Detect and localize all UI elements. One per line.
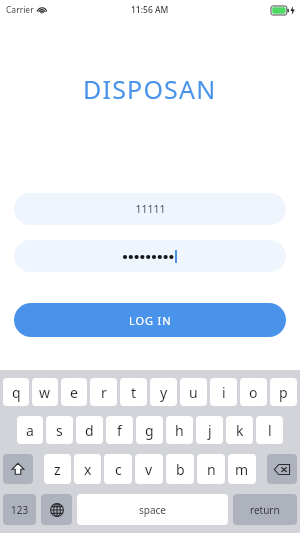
button[interactable]: r: [90, 378, 117, 406]
staticText: v: [145, 460, 153, 479]
staticText: m: [235, 460, 249, 479]
button[interactable]: d: [76, 416, 103, 444]
button[interactable]: o: [240, 378, 267, 406]
staticText: 11:56 AM: [131, 4, 169, 16]
button[interactable]: space: [77, 494, 228, 525]
button[interactable]: Change keyboard language: [41, 494, 72, 525]
staticText: l: [268, 421, 272, 440]
staticText: g: [145, 421, 154, 440]
staticText: space: [139, 503, 166, 517]
staticText: s: [56, 421, 63, 440]
button[interactable]: b: [166, 454, 194, 484]
staticText: w: [39, 383, 51, 402]
staticText: f: [117, 421, 122, 440]
staticText: r: [101, 383, 107, 402]
staticText: z: [54, 460, 61, 479]
button[interactable]: h: [166, 416, 193, 444]
button[interactable]: s: [46, 416, 73, 444]
button[interactable]: LOG IN: [14, 303, 286, 337]
staticText: t: [131, 383, 137, 402]
button[interactable]: v: [135, 454, 163, 484]
button[interactable]: n: [197, 454, 225, 484]
button[interactable]: e: [61, 378, 87, 406]
button[interactable]: x: [74, 454, 101, 484]
button[interactable]: t: [120, 378, 147, 406]
button[interactable]: k: [226, 416, 253, 444]
staticText: Carrier: [6, 4, 34, 16]
button[interactable]: y: [150, 378, 177, 406]
button[interactable]: l: [256, 416, 283, 444]
button[interactable]: z: [44, 454, 71, 484]
staticText: u: [189, 383, 198, 402]
button[interactable]: return: [233, 494, 297, 525]
staticText: o: [249, 383, 258, 402]
button[interactable]: p: [270, 378, 297, 406]
staticText: d: [85, 421, 94, 440]
button[interactable]: q: [3, 378, 29, 406]
staticText: i: [222, 383, 226, 402]
staticText: 11111: [135, 202, 166, 216]
staticText: x: [84, 460, 92, 479]
button[interactable]: m: [228, 454, 256, 484]
button[interactable]: Backspace: [267, 454, 297, 484]
button[interactable]: f: [106, 416, 133, 444]
staticText: return: [250, 503, 280, 517]
staticText: k: [236, 421, 244, 440]
staticText: DISPOSAN: [83, 72, 217, 106]
staticText: q: [12, 383, 21, 402]
button[interactable]: w: [32, 378, 58, 406]
staticText: LOG IN: [129, 313, 172, 328]
staticText: y: [160, 383, 168, 402]
staticText: j: [208, 421, 212, 440]
button[interactable]: a: [17, 416, 43, 444]
staticText: 123: [11, 503, 29, 517]
staticText: n: [207, 460, 216, 479]
button[interactable]: j: [196, 416, 223, 444]
button[interactable]: Shift: [3, 454, 33, 484]
staticText: c: [115, 460, 122, 479]
button[interactable]: c: [104, 454, 132, 484]
button[interactable]: [14, 240, 286, 272]
staticText: a: [26, 421, 34, 440]
button[interactable]: 11111: [14, 193, 286, 225]
button[interactable]: i: [210, 378, 237, 406]
button[interactable]: 123: [3, 494, 36, 525]
staticText: p: [279, 383, 288, 402]
staticText: e: [70, 383, 78, 402]
staticText: b: [176, 460, 185, 479]
button[interactable]: g: [136, 416, 163, 444]
staticText: h: [175, 421, 184, 440]
button[interactable]: u: [180, 378, 207, 406]
